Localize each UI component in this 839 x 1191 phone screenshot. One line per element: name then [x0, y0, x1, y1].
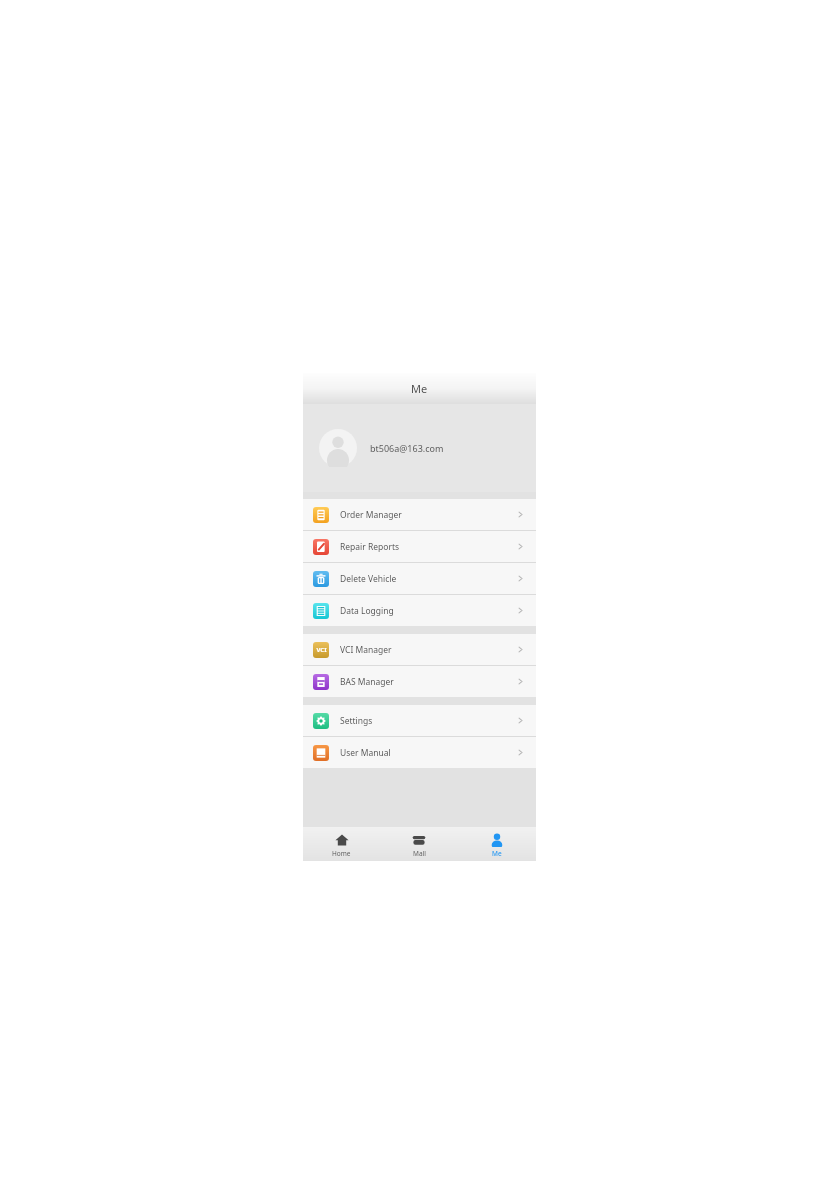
button[interactable]: bt506a@163.com	[303, 404, 536, 492]
button[interactable]: Order Manager	[303, 499, 536, 530]
staticText: Me	[411, 381, 428, 396]
button[interactable]: Settings	[303, 705, 536, 736]
button[interactable]: BAS Manager	[303, 666, 536, 697]
staticText: Order Manager	[340, 509, 402, 521]
button[interactable]: Repair Reports	[303, 531, 536, 562]
button[interactable]: User Manual	[303, 737, 536, 768]
button[interactable]: Data Logging	[303, 595, 536, 626]
staticText: bt506a@163.com	[370, 442, 444, 454]
button[interactable]: Me	[458, 827, 536, 861]
staticText: Repair Reports	[340, 541, 400, 553]
staticText: Home	[332, 849, 351, 858]
staticText: Delete Vehicle	[340, 573, 397, 585]
staticText: Mall	[413, 849, 426, 858]
staticText: Me	[492, 849, 502, 858]
staticText: User Manual	[340, 747, 391, 759]
staticText: Data Logging	[340, 605, 394, 617]
other: Home	[335, 833, 349, 847]
staticText: BAS Manager	[340, 676, 394, 688]
other: Me	[490, 833, 504, 847]
staticText: VCI	[316, 646, 327, 654]
staticText: VCI Manager	[340, 644, 392, 656]
staticText: Settings	[340, 715, 373, 727]
button[interactable]: Delete Vehicle	[303, 563, 536, 594]
button[interactable]: VCI	[303, 634, 536, 665]
button[interactable]: Home	[303, 827, 380, 861]
other: Mall	[412, 833, 426, 847]
button[interactable]: Mall	[380, 827, 458, 861]
